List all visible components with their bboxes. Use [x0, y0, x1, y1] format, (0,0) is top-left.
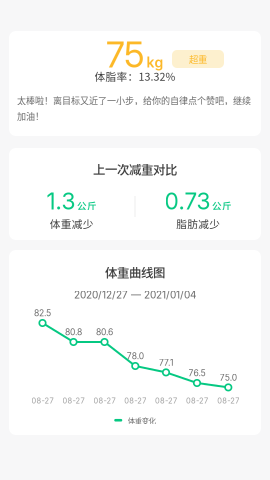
staticText: 08-27	[155, 397, 177, 404]
staticText: 太棒啦！离目标又近了一小步，给你的自律点个赞吧，继续加油！	[17, 95, 251, 121]
staticText: 78.0	[127, 352, 144, 360]
staticText: 77.1	[159, 358, 173, 367]
staticText: 08-27	[62, 397, 84, 404]
staticText: 75	[106, 37, 145, 72]
button[interactable]: 超重	[172, 50, 224, 68]
staticText: 公斤	[77, 200, 97, 211]
staticText: 体重曲线图	[105, 265, 165, 279]
staticText: 体重减少	[50, 217, 94, 230]
staticText: 08-27	[186, 397, 208, 404]
staticText: 82.5	[34, 309, 51, 317]
staticText: 08-27	[217, 397, 239, 404]
staticText: 75.0	[220, 373, 237, 382]
staticText: 体重变化	[128, 416, 156, 424]
staticText: 1.3	[46, 190, 75, 212]
staticText: 80.8	[65, 328, 82, 336]
staticText: 08-27	[124, 397, 146, 404]
staticText: 上一次减重对比	[93, 162, 177, 176]
staticText: 体脂率：13.32%	[94, 70, 175, 82]
staticText: 80.6	[96, 328, 113, 336]
staticText: 脂肪减少	[176, 217, 220, 230]
staticText: 08-27	[31, 397, 53, 404]
staticText: 76.5	[188, 369, 205, 377]
staticText: 超重	[189, 54, 207, 64]
staticText: 2020/12/27 — 2021/01/04	[74, 290, 196, 300]
staticText: 08-27	[93, 397, 115, 404]
staticText: kg	[146, 55, 163, 69]
staticText: 0.73	[164, 190, 210, 212]
staticText: 公斤	[212, 200, 232, 211]
